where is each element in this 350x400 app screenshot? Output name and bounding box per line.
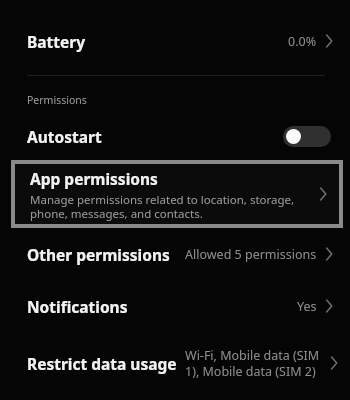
staticText: Notifications bbox=[27, 296, 128, 317]
button[interactable]: Battery bbox=[0, 24, 350, 58]
staticText: Permissions bbox=[27, 93, 87, 107]
button[interactable]: App permissions bbox=[15, 164, 339, 224]
staticText: Manage permissions related to location, … bbox=[30, 192, 295, 221]
staticText: Yes bbox=[297, 298, 317, 315]
button[interactable]: Restrict data usage bbox=[0, 340, 350, 386]
staticText: Restrict data usage bbox=[27, 353, 177, 374]
staticText: Wi-Fi, Mobile data (SIM 1), Mobile data … bbox=[185, 347, 325, 379]
staticText: App permissions bbox=[30, 168, 158, 189]
staticText: Battery bbox=[27, 31, 86, 52]
staticText: Allowed 5 permissions bbox=[185, 246, 317, 263]
button[interactable]: Notifications bbox=[0, 290, 350, 322]
button[interactable]: Other permissions bbox=[0, 232, 350, 276]
staticText: Other permissions bbox=[27, 244, 170, 265]
other: Autostart toggle, off bbox=[283, 126, 331, 147]
staticText: 0.0% bbox=[288, 33, 317, 50]
staticText: Autostart bbox=[27, 126, 102, 147]
button[interactable]: Autostart bbox=[0, 121, 350, 151]
